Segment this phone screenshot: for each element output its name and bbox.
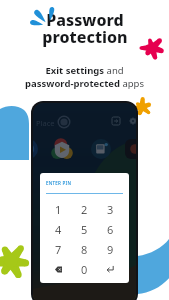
staticText: ENTER PIN <box>46 180 72 186</box>
staticText: 6 <box>107 222 114 237</box>
button[interactable]: App <box>33 139 38 159</box>
button[interactable]: 8 <box>71 239 97 259</box>
button[interactable]: 3 <box>97 199 123 219</box>
button[interactable]: 2 <box>71 199 97 219</box>
staticText: 9 <box>107 242 114 257</box>
button[interactable]: Enter <box>97 259 123 279</box>
staticText: Exit settings and password-protected app… <box>25 64 144 90</box>
staticText: Password protection <box>42 9 128 48</box>
staticText: 8 <box>81 242 88 257</box>
button[interactable]: Delete <box>46 259 71 279</box>
button[interactable]: 0 <box>71 259 97 279</box>
button[interactable]: 7 <box>46 239 71 259</box>
button[interactable]: 9 <box>97 239 123 259</box>
button[interactable]: 6 <box>97 219 123 239</box>
staticText: 4 <box>55 222 62 237</box>
staticText: 1 <box>55 202 62 217</box>
button[interactable]: 1 <box>46 199 71 219</box>
staticText: 2 <box>81 202 88 217</box>
staticText: 5 <box>81 222 88 237</box>
staticText: Place <box>36 118 55 128</box>
button[interactable]: Assistant <box>57 115 71 129</box>
button[interactable]: Add widget <box>112 117 120 125</box>
button[interactable]: 4 <box>46 219 71 239</box>
button[interactable]: App <box>91 139 111 159</box>
staticText: 0 <box>81 262 88 277</box>
button[interactable]: 5 <box>71 219 97 239</box>
staticText: 3 <box>107 202 114 217</box>
button[interactable]: App <box>125 139 136 159</box>
button[interactable]: Settings <box>129 117 136 125</box>
staticText: 7 <box>55 242 62 257</box>
button[interactable]: App <box>52 139 72 159</box>
